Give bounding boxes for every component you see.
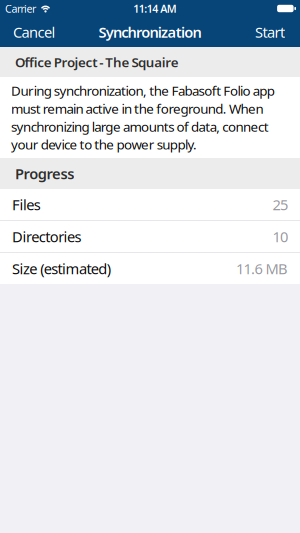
staticText: synchronizing large amounts of data, con… bbox=[11, 118, 269, 135]
staticText: During synchronization, the Fabasoft Fol… bbox=[11, 82, 275, 99]
staticText: Office Project - The Squaire bbox=[15, 53, 179, 71]
staticText: 10 bbox=[272, 227, 288, 246]
staticText: Carrier bbox=[5, 1, 36, 16]
staticText: Start bbox=[255, 22, 285, 42]
staticText: Cancel bbox=[13, 22, 55, 42]
staticText: 25 bbox=[272, 195, 288, 214]
staticText: Synchronization bbox=[98, 22, 202, 42]
staticText: Progress bbox=[15, 164, 74, 183]
staticText: must remain active in the foreground. Wh… bbox=[11, 100, 263, 117]
staticText: 11:14 AM bbox=[133, 1, 177, 16]
button[interactable]: Start bbox=[255, 22, 285, 42]
staticText: Directories bbox=[12, 227, 81, 246]
button[interactable]: Cancel bbox=[13, 22, 55, 42]
staticText: your device to the power supply. bbox=[11, 135, 197, 153]
staticText: 11.6 MB bbox=[236, 259, 288, 278]
staticText: Size (estimated) bbox=[12, 259, 111, 278]
staticText: Files bbox=[12, 195, 41, 214]
